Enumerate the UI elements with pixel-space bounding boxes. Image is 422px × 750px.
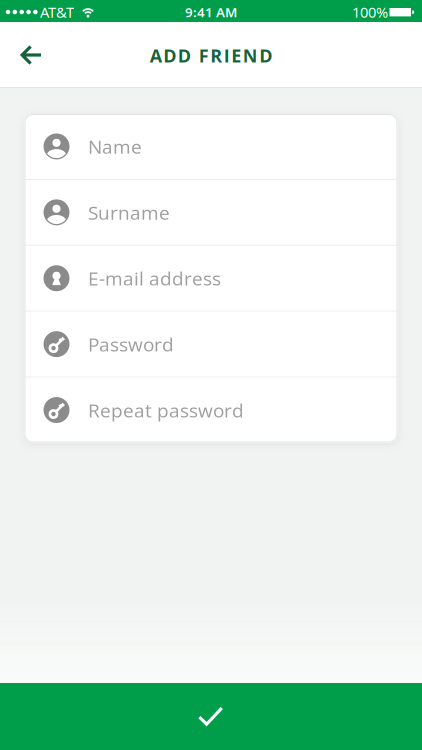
button[interactable]: Back bbox=[0, 22, 56, 88]
staticText: AT&T bbox=[40, 2, 74, 22]
staticText: Surname bbox=[88, 199, 170, 225]
button[interactable]: Name bbox=[24, 114, 397, 179]
button[interactable]: Surname bbox=[24, 180, 397, 245]
button[interactable]: Repeat password bbox=[24, 378, 397, 442]
staticText: 9:41 AM bbox=[185, 3, 237, 21]
button[interactable]: E-mail address bbox=[24, 246, 397, 311]
staticText: ADD FRIEND bbox=[150, 43, 272, 68]
button[interactable]: Password bbox=[24, 312, 397, 377]
staticText: Repeat password bbox=[88, 397, 244, 423]
staticText: 100% bbox=[352, 2, 388, 22]
button[interactable]: Confirm bbox=[0, 683, 422, 750]
staticText: Password bbox=[88, 331, 174, 357]
staticText: E-mail address bbox=[88, 265, 221, 291]
staticText: Name bbox=[88, 133, 142, 159]
